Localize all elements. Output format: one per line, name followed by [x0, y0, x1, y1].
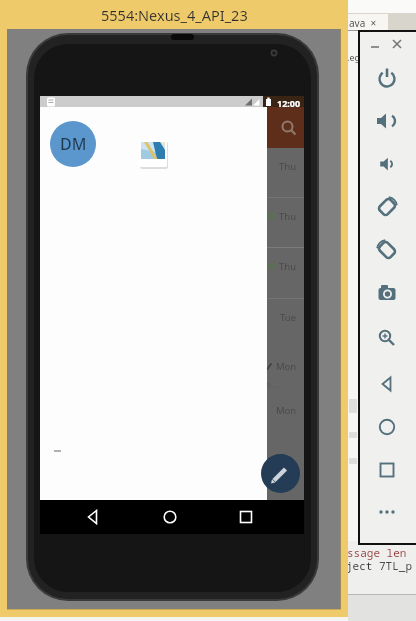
button[interactable]: [373, 64, 401, 92]
button[interactable]: [267, 107, 304, 148]
button[interactable]: DM: [50, 121, 96, 167]
staticText: Mon: [276, 360, 297, 373]
staticText: Mon: [276, 404, 297, 417]
button[interactable]: [139, 140, 168, 168]
staticText: Tue: [280, 311, 297, 324]
button[interactable]: [373, 279, 401, 307]
button[interactable]: Mon: [267, 360, 297, 373]
button[interactable]: [370, 38, 382, 50]
button[interactable]: Tue: [267, 311, 297, 324]
button[interactable]: [391, 38, 403, 50]
button[interactable]: [373, 193, 401, 221]
staticText: e...: [266, 378, 279, 390]
button[interactable]: [261, 454, 300, 493]
button[interactable]: [373, 107, 401, 135]
staticText: ject 7TL_p: [346, 558, 412, 573]
button[interactable]: Mon: [267, 404, 297, 417]
button[interactable]: Thu: [267, 260, 297, 273]
button[interactable]: [373, 456, 401, 484]
staticText: .eg: [347, 51, 361, 63]
button[interactable]: [82, 506, 104, 528]
button[interactable]: [159, 506, 181, 528]
button[interactable]: Thu: [267, 160, 297, 173]
staticText: Thu: [279, 210, 297, 223]
staticText: 5554:Nexus_4_API_23: [101, 5, 248, 25]
button[interactable]: Thu: [267, 210, 297, 223]
button[interactable]: [373, 413, 401, 441]
button[interactable]: ava ×: [348, 14, 388, 31]
staticText: Thu: [279, 160, 297, 173]
staticText: 12:00: [277, 97, 301, 109]
button[interactable]: [373, 370, 401, 398]
button[interactable]: [235, 506, 257, 528]
button[interactable]: [373, 236, 401, 264]
staticText: ava ×: [349, 16, 377, 30]
button[interactable]: [373, 498, 401, 526]
staticText: DM: [60, 133, 87, 155]
staticText: ssage len: [347, 545, 407, 560]
button[interactable]: [373, 324, 401, 352]
staticText: Thu: [279, 260, 297, 273]
button[interactable]: [373, 150, 401, 178]
